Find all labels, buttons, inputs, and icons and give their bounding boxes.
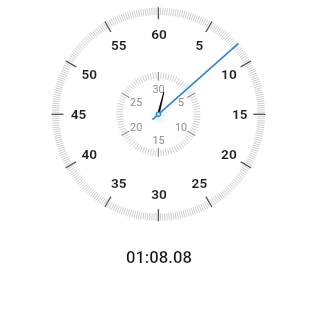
button[interactable]: Stopwatch (0, 0, 320, 320)
